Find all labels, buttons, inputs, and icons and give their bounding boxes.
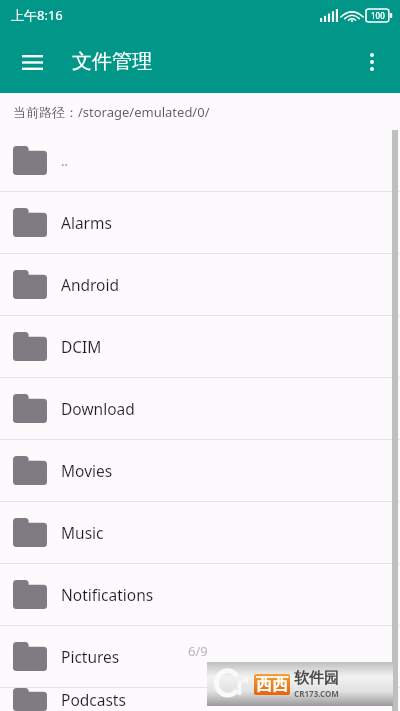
button[interactable]: Podcasts <box>0 688 400 711</box>
button[interactable]: DCIM <box>0 316 400 377</box>
staticText: Android <box>61 274 120 295</box>
button[interactable]: Movies <box>0 440 400 501</box>
button[interactable]: Download <box>0 378 400 439</box>
button[interactable]: Notifications <box>0 564 400 625</box>
staticText: .. <box>61 152 68 170</box>
staticText: 软件园 <box>294 669 339 688</box>
staticText: Alarms <box>61 212 112 233</box>
staticText: 文件管理 <box>72 49 152 74</box>
staticText: Notifications <box>61 584 154 605</box>
staticText: Pictures <box>61 646 120 667</box>
button[interactable]: Pictures <box>0 626 400 687</box>
staticText: Movies <box>61 460 113 481</box>
staticText: 6/9 <box>188 642 208 660</box>
staticText: DCIM <box>61 336 102 357</box>
staticText: 当前路径：/storage/emulated/0/ <box>13 103 210 121</box>
staticText: Podcasts <box>61 689 126 710</box>
staticText: 上午8:16 <box>11 6 63 24</box>
staticText: CR173.COM <box>294 688 339 699</box>
button[interactable]: Open navigation menu <box>10 40 54 84</box>
staticText: 西西 <box>256 675 288 695</box>
button[interactable]: .. <box>0 130 400 191</box>
button[interactable]: Alarms <box>0 192 400 253</box>
button[interactable]: More options <box>350 40 394 84</box>
button[interactable]: Music <box>0 502 400 563</box>
staticText: Download <box>61 398 135 419</box>
staticText: 100 <box>371 10 385 21</box>
staticText: Music <box>61 522 104 543</box>
button[interactable]: Android <box>0 254 400 315</box>
